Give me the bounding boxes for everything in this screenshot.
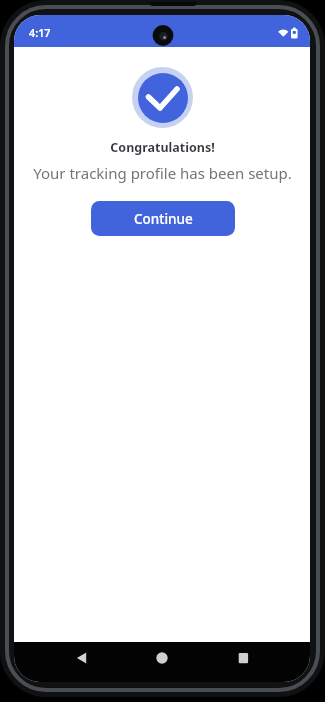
staticText: Continue (134, 210, 193, 228)
button[interactable]: Continue (91, 201, 235, 236)
button[interactable] (231, 648, 255, 672)
button[interactable] (150, 648, 174, 672)
staticText: 4:17 (29, 25, 51, 40)
staticText: Your tracking profile has been setup. (33, 163, 292, 183)
button[interactable] (70, 648, 94, 672)
staticText: Congratulations! (110, 139, 215, 156)
